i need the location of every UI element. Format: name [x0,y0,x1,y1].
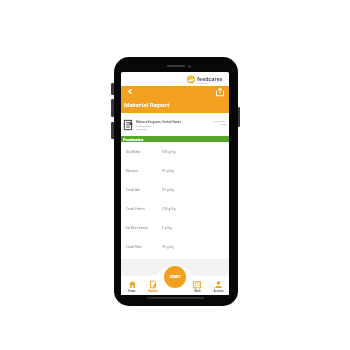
staticText: Reports [148,289,158,292]
button[interactable]: Rebecca Ferguson, United States [121,113,229,136]
staticText: Account [213,289,224,292]
staticText: Material Report [124,100,170,108]
staticText: Moisture [126,169,139,173]
button[interactable]: START [164,266,186,288]
staticText: START [170,275,181,279]
staticText: 93 g/kg [162,188,174,192]
staticText: Crude Ash [126,188,140,192]
button[interactable]: Back [125,86,135,96]
staticText: 96 g/kg [162,245,174,249]
button[interactable]: Dry Matter [121,142,229,161]
staticText: 2 g/kg [162,226,172,230]
staticText: Home [128,289,136,292]
button[interactable]: Crude Ash [121,180,229,199]
button[interactable]: Reports [143,281,163,292]
staticText: 13:46 [220,122,226,125]
staticText: feedcares [197,75,223,82]
staticText: Crude Fiber [126,245,142,249]
staticText: Work [194,289,201,292]
staticText: Crude Protein [126,207,145,211]
button[interactable]: Fat Ether Extract [121,218,229,237]
staticText: Fat Ether Extract [126,226,149,230]
staticText: Rebecca Ferguson, United States [136,120,181,124]
staticText: nutrition [197,82,208,85]
staticText: 04-07-2021 [213,119,226,122]
staticText: 905 g/kg [162,150,176,154]
staticText: Dry Matter [126,150,141,154]
button[interactable]: Account [208,281,228,292]
button[interactable]: Work [187,281,207,292]
button[interactable]: Home [122,281,142,292]
staticText: 236 g/kg [162,207,176,211]
staticText: 95 g/kg [162,169,174,173]
button[interactable]: Crude Protein [121,199,229,218]
button[interactable]: Moisture [121,161,229,180]
staticText: Proximates [123,137,144,142]
button[interactable]: Crude Fiber [121,237,229,256]
button[interactable]: Share [215,87,225,97]
staticText: Grape Extract [136,125,151,128]
staticText: #5478465 [136,128,147,131]
